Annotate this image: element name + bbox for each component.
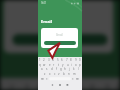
staticText: p — [79, 63, 81, 67]
staticText: Email — [3, 12, 114, 23]
staticText: 8 — [90, 81, 96, 90]
staticText: y — [62, 63, 64, 67]
staticText: e — [49, 63, 51, 67]
staticText: 1 — [39, 58, 41, 62]
staticText: b — [63, 72, 65, 76]
staticText: l — [78, 67, 79, 71]
staticText: 9 — [105, 81, 111, 90]
staticText: g — [60, 67, 62, 71]
staticText: k — [73, 67, 75, 71]
staticText: 4 — [36, 81, 42, 90]
staticText: t — [58, 63, 60, 67]
staticText: Email — [41, 33, 78, 37]
staticText: 7 — [66, 58, 68, 62]
staticText: 5 — [57, 58, 59, 62]
staticText: x — [49, 72, 51, 76]
staticText: d — [51, 67, 53, 71]
staticText: u — [67, 63, 69, 67]
staticText: 6 — [63, 81, 69, 90]
staticText: w — [43, 63, 46, 67]
staticText: z — [44, 72, 46, 76]
button[interactable] — [44, 41, 76, 45]
staticText: o — [75, 63, 77, 67]
staticText: Email — [41, 19, 52, 24]
staticText: m — [73, 72, 76, 76]
staticText: q — [39, 63, 41, 67]
staticText: 7 — [78, 81, 84, 90]
staticText: n — [68, 72, 70, 76]
staticText: h — [64, 67, 66, 71]
staticText: c — [54, 72, 56, 76]
staticText: 0 — [117, 81, 120, 90]
staticText: j — [69, 67, 70, 71]
staticText: 9:41 — [41, 1, 47, 5]
staticText: s — [46, 67, 48, 71]
staticText: v — [58, 72, 60, 76]
staticText: f — [56, 67, 57, 71]
staticText: 2 — [43, 58, 45, 62]
staticText: r — [53, 63, 55, 67]
staticText: 1 — [0, 81, 3, 90]
staticText: 6 — [61, 58, 63, 62]
staticText: 9 — [75, 58, 77, 62]
staticText: 3 — [48, 58, 50, 62]
other: Tap pointer — [0, 0, 120, 90]
staticText: 5 — [51, 81, 57, 90]
staticText: 8 — [70, 58, 72, 62]
staticText: 0 — [79, 58, 81, 62]
staticText: 2 — [9, 81, 15, 90]
button[interactable] — [12, 34, 108, 45]
staticText: i — [71, 63, 72, 67]
staticText: 3 — [24, 81, 30, 90]
staticText: a — [41, 67, 43, 71]
staticText: 4 — [52, 58, 54, 62]
